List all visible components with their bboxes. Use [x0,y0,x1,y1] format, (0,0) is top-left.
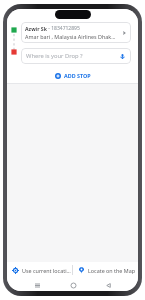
button[interactable]: Back [103,280,113,290]
button[interactable]: ADD STOP [7,69,138,82]
button[interactable]: Locate on the Map [73,262,138,278]
staticText: Use current location [22,267,72,274]
other: Open pickup details [121,30,127,36]
staticText: Where is your Drop ? [26,52,83,60]
button[interactable]: Recent apps [32,280,42,290]
staticText: - 1834712895 [47,25,80,32]
button[interactable]: Azwir Sk [21,22,131,43]
button[interactable]: Home [68,280,78,290]
other: Voice search [119,53,126,60]
staticText: Locate on the Map [88,267,136,274]
staticText: Azwir Sk [25,25,47,32]
button[interactable]: Use current location [7,262,72,278]
staticText: Amar bari , Malaysia Airlines Dhak... [25,33,116,40]
staticText: ADD STOP [64,72,91,79]
button[interactable]: Where is your Drop ? [21,48,131,64]
